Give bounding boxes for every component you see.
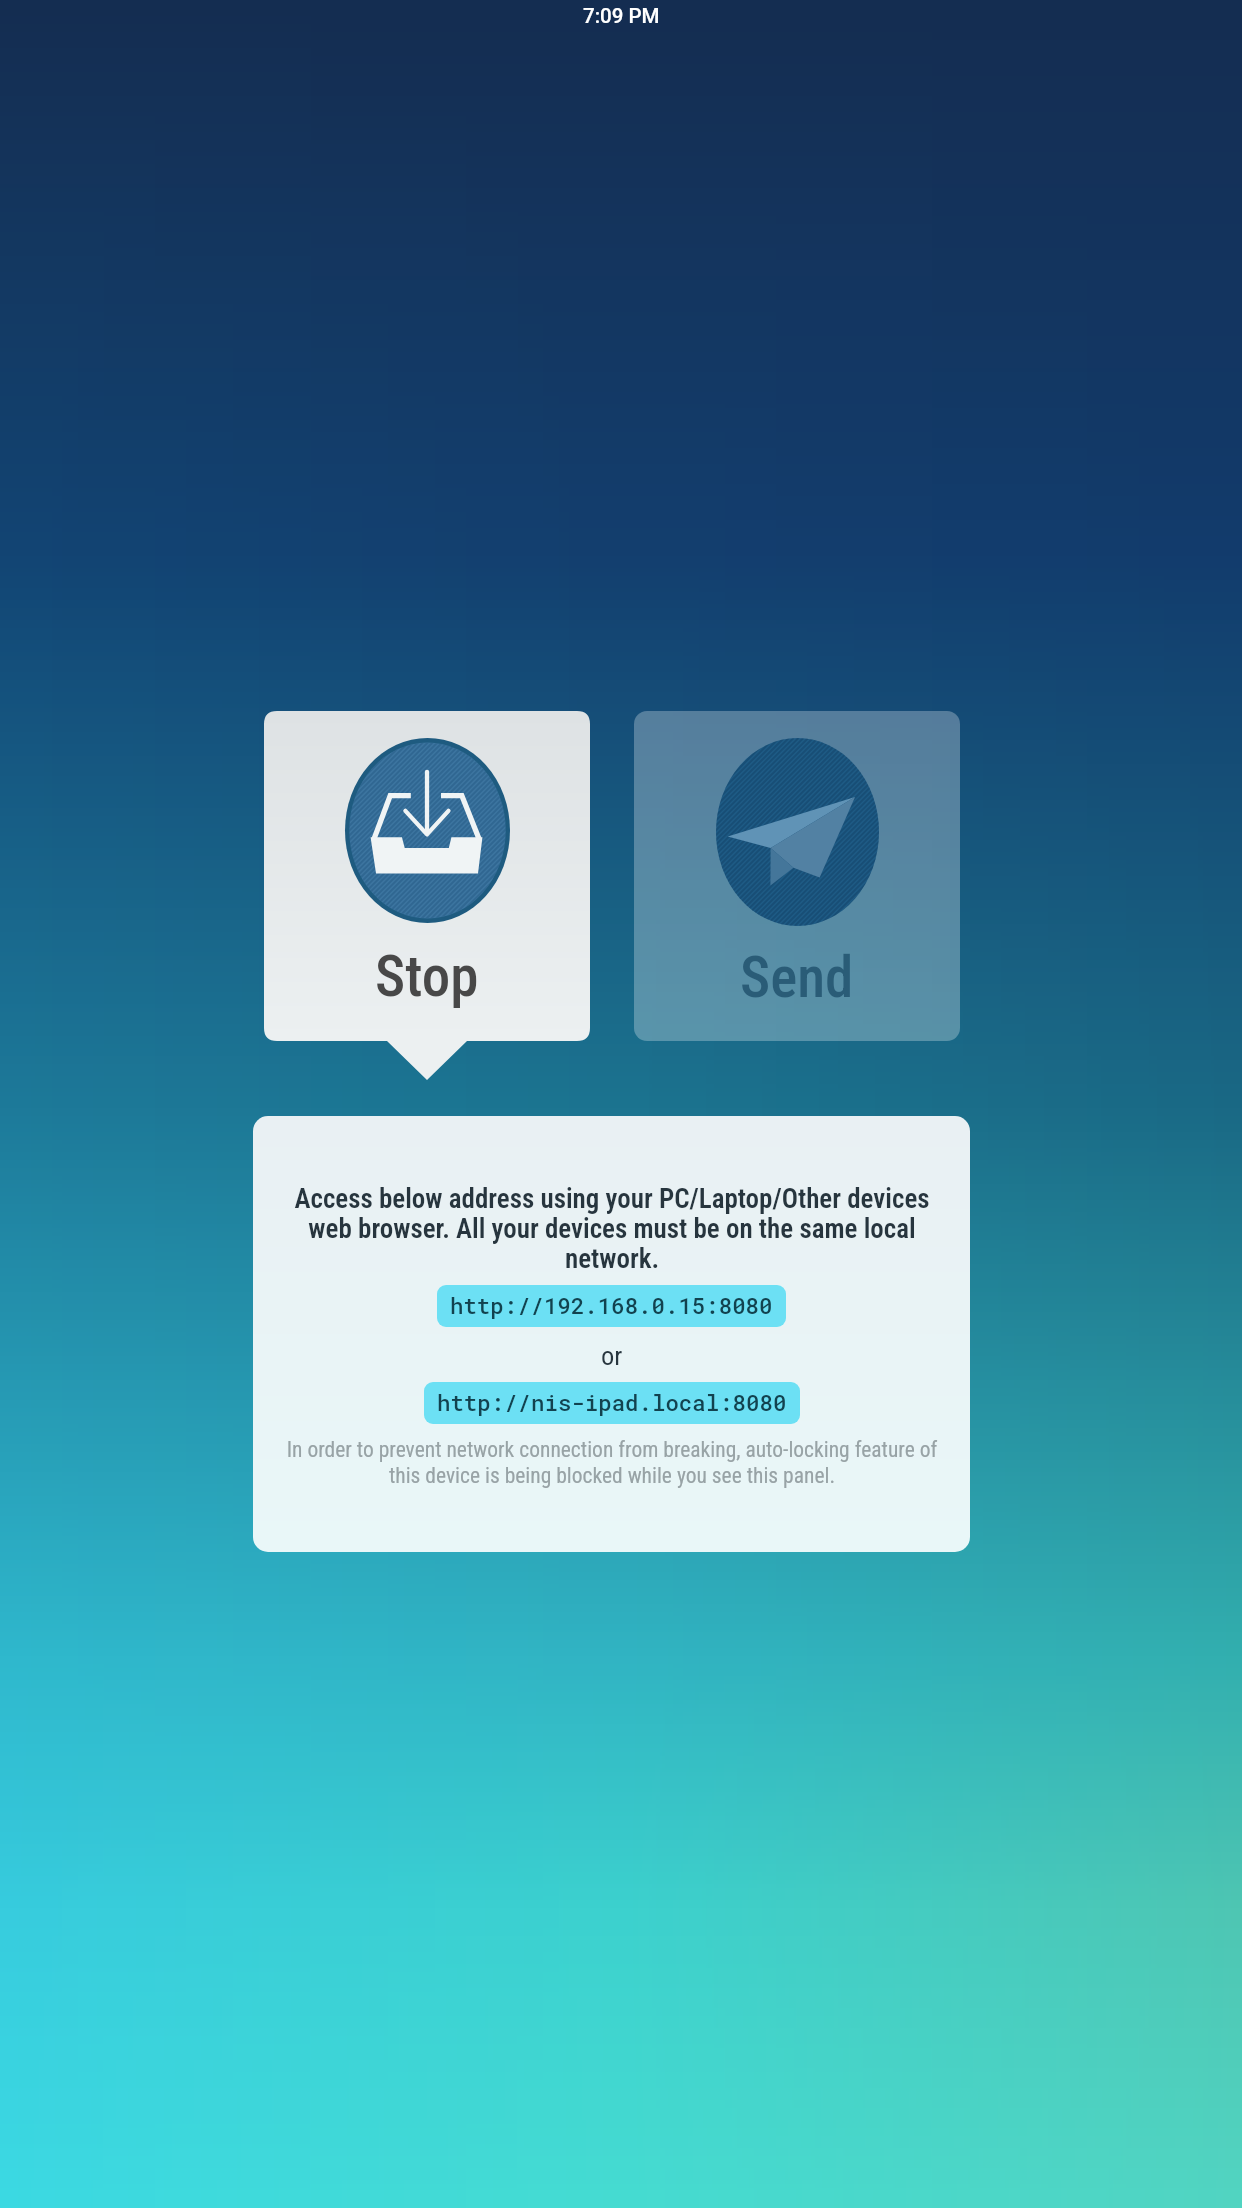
staticText: 7:09 PM <box>583 4 660 28</box>
staticText: Access below address using your PC/Lapto… <box>282 1183 942 1275</box>
staticText: Stop <box>375 943 479 1010</box>
button[interactable]: Send files <box>634 711 960 1041</box>
other: Receive <box>345 738 510 923</box>
button[interactable]: http://nis-ipad.local:8080 <box>424 1382 800 1424</box>
staticText: http://192.168.0.15:8080 <box>450 1291 773 1321</box>
button[interactable]: Stop receiving <box>264 711 590 1081</box>
staticText: http://nis-ipad.local:8080 <box>437 1388 787 1418</box>
staticText: In order to prevent network connection f… <box>276 1437 948 1488</box>
button[interactable]: http://192.168.0.15:8080 <box>437 1285 786 1327</box>
staticText: Send <box>740 944 854 1011</box>
other: Send <box>716 738 879 926</box>
staticText: or <box>601 1340 623 1371</box>
